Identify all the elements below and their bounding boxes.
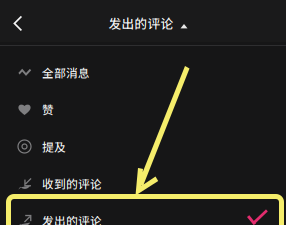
staticText: 收到的评论: [42, 175, 102, 192]
button[interactable]: 发出的评论: [98, 0, 187, 48]
staticText: 全部消息: [42, 64, 90, 81]
staticText: 提及: [42, 138, 66, 155]
button[interactable]: 全部消息: [0, 54, 286, 91]
button[interactable]: Back: [0, 0, 34, 42]
button[interactable]: 收到的评论: [0, 165, 286, 202]
button[interactable]: 提及: [0, 128, 286, 165]
staticText: 赞: [42, 101, 54, 118]
button[interactable]: 发出的评论: [0, 202, 286, 225]
staticText: 发出的评论: [42, 212, 102, 225]
staticText: 发出的评论: [108, 14, 173, 32]
button[interactable]: 赞: [0, 91, 286, 128]
